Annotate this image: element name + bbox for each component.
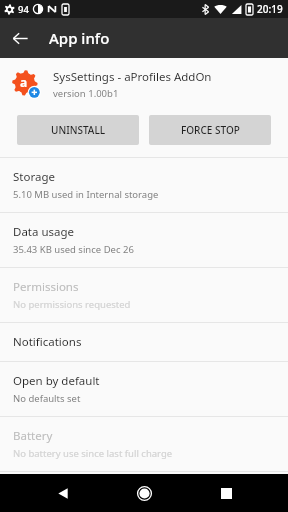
- staticText: 94: [18, 3, 29, 16]
- button[interactable]: Data usage: [0, 213, 288, 267]
- staticText: Notifications: [13, 334, 82, 350]
- button[interactable]: UNINSTALL: [17, 115, 139, 145]
- staticText: version 1.00b1: [53, 87, 119, 100]
- staticText: Permissions: [13, 279, 79, 295]
- staticText: a: [20, 74, 28, 90]
- staticText: FORCE STOP: [181, 123, 240, 137]
- staticText: No defaults set: [13, 392, 81, 405]
- staticText: 35.43 KB used since Dec 26: [13, 243, 134, 256]
- button[interactable]: Notifications: [0, 323, 288, 361]
- staticText: SysSettings - aProfiles AddOn: [53, 69, 212, 85]
- button[interactable]: Open by default: [0, 362, 288, 416]
- staticText: No permissions requested: [13, 298, 131, 311]
- staticText: 5.10 MB used in Internal storage: [13, 188, 159, 201]
- button[interactable]: FORCE STOP: [149, 115, 271, 145]
- staticText: 20:19: [257, 2, 283, 16]
- staticText: UNINSTALL: [51, 123, 106, 137]
- staticText: Battery: [13, 428, 53, 444]
- button[interactable]: Home: [125, 474, 163, 512]
- button[interactable]: Storage: [0, 158, 288, 212]
- staticText: App info: [49, 28, 110, 48]
- button[interactable]: Back: [44, 474, 82, 512]
- staticText: Data usage: [13, 224, 75, 240]
- staticText: Storage: [13, 169, 55, 185]
- staticText: No battery use since last full charge: [13, 447, 173, 460]
- button[interactable]: Permissions: [0, 268, 288, 322]
- button[interactable]: Battery: [0, 417, 288, 471]
- button[interactable]: Recent apps: [207, 474, 245, 512]
- button[interactable]: Navigate up: [0, 18, 40, 58]
- staticText: Open by default: [13, 373, 100, 389]
